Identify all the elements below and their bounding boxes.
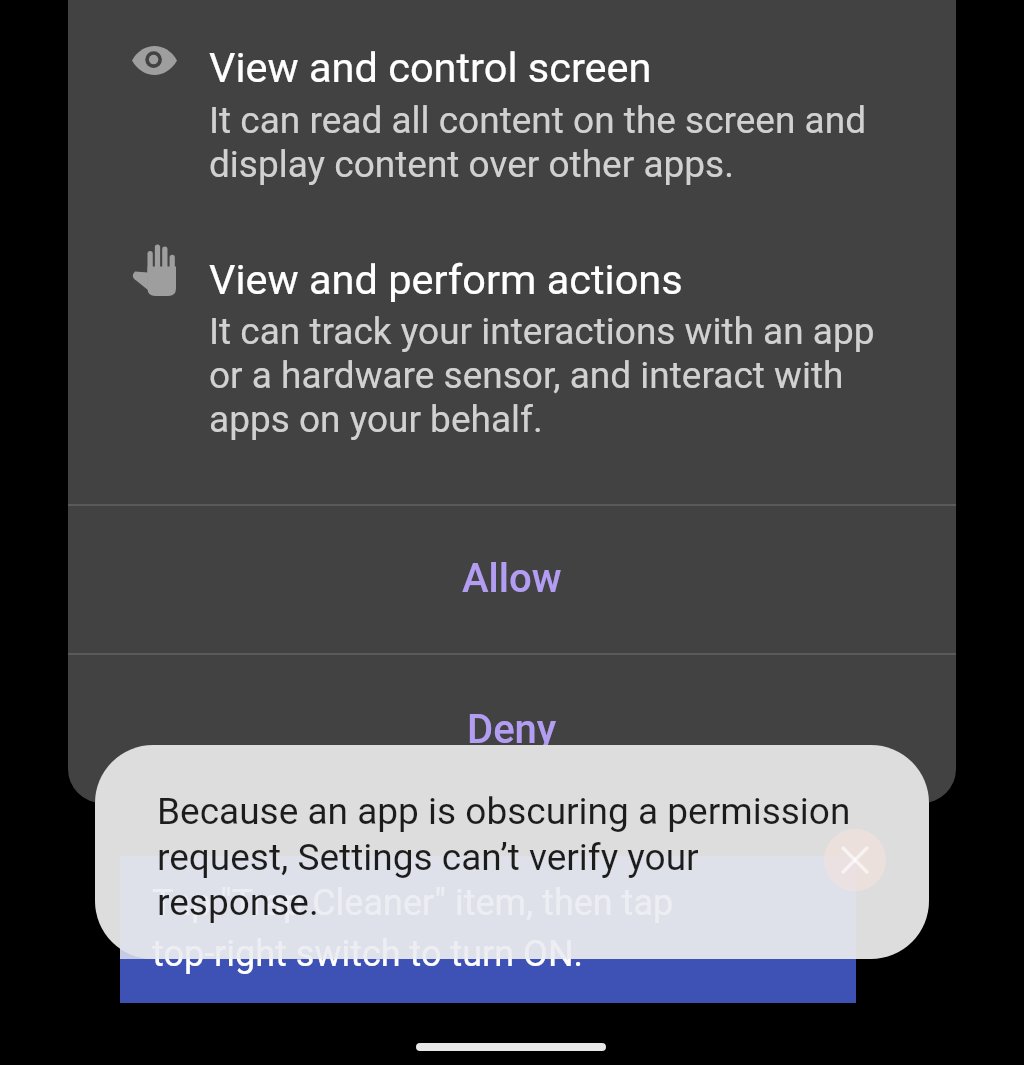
other: View and perform actions xyxy=(130,247,176,296)
button[interactable] xyxy=(120,856,856,1003)
staticText: It can track your interactions with an a… xyxy=(209,310,899,441)
staticText: View and control screen xyxy=(209,43,652,92)
staticText: View and perform actions xyxy=(209,255,683,304)
staticText: It can read all content on the screen an… xyxy=(209,99,885,186)
button[interactable]: Deny xyxy=(68,655,956,803)
button[interactable]: Close xyxy=(824,829,886,891)
staticText: Because an app is obscuring a permission… xyxy=(157,790,867,924)
other: View and control screen xyxy=(132,45,177,76)
staticText: Deny xyxy=(467,706,557,753)
staticText: Allow xyxy=(462,555,562,602)
staticText: Tap "Trap Cleaner" item, then tap top-ri… xyxy=(152,882,717,975)
staticText: Tap "Trap Cleaner" item, then tap top-ri… xyxy=(152,882,717,959)
button[interactable]: Allow xyxy=(68,506,956,651)
